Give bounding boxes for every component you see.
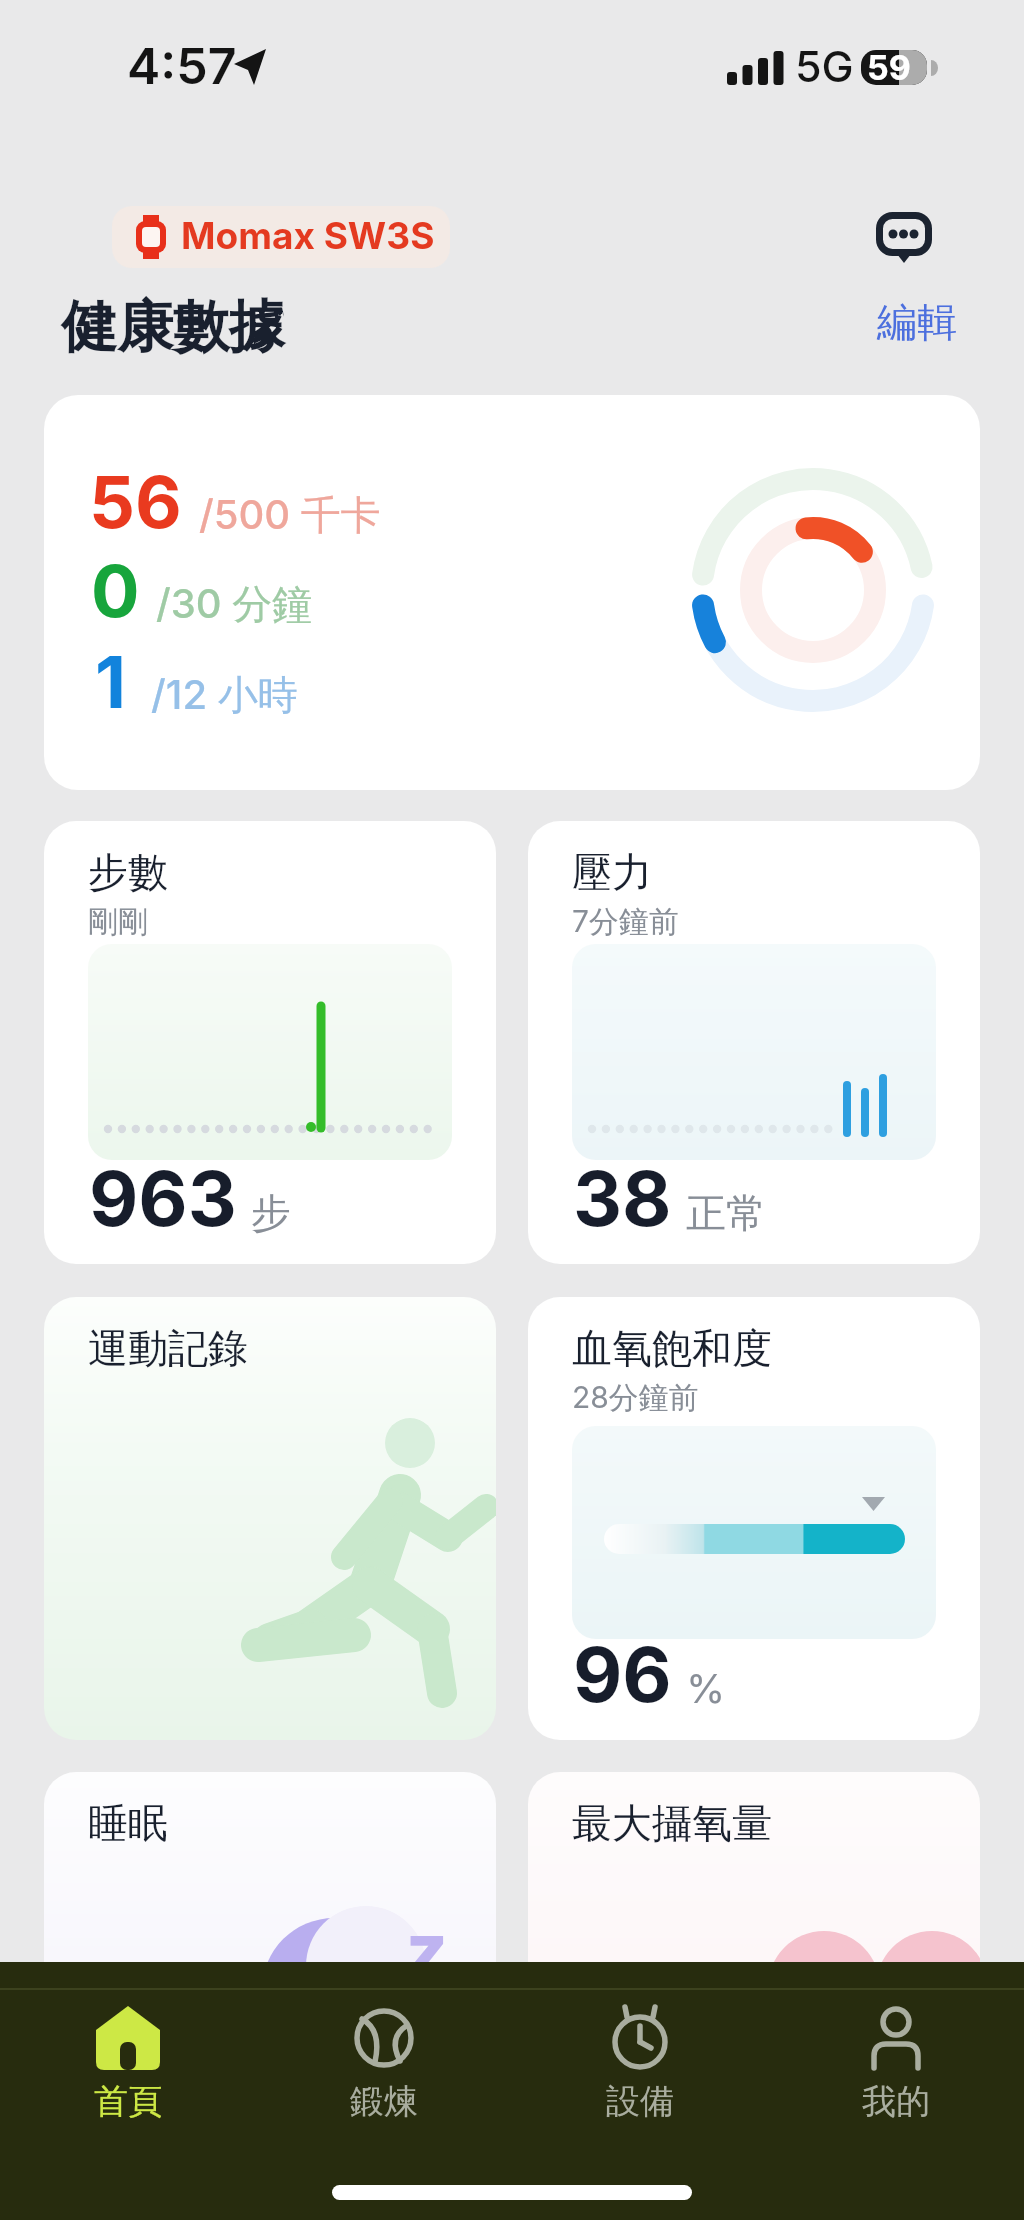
staticText: 編輯 xyxy=(877,297,957,347)
staticText: 剛剛 xyxy=(88,903,148,941)
staticText: Momax SW3S xyxy=(181,213,435,258)
staticText: z xyxy=(406,1905,448,1992)
staticText: 1 xyxy=(95,638,127,725)
button[interactable]: 步數 xyxy=(44,821,496,1264)
staticText: 鍛煉 xyxy=(350,2080,418,2123)
button[interactable] xyxy=(866,200,942,276)
staticText: /12 小時 xyxy=(151,670,298,721)
button[interactable]: 首頁 xyxy=(38,1992,218,2172)
button[interactable]: 設備 xyxy=(550,1992,730,2172)
button[interactable]: 我的 xyxy=(806,1992,986,2172)
staticText: 28分鐘前 xyxy=(572,1379,699,1417)
staticText: 設備 xyxy=(606,2080,674,2123)
staticText: 睡眠 xyxy=(88,1798,168,1848)
button[interactable]: 編輯 xyxy=(860,292,980,358)
staticText: /30 分鐘 xyxy=(156,579,313,630)
staticText: 壓力 xyxy=(572,847,652,897)
staticText: % xyxy=(686,1664,726,1712)
staticText: 0 xyxy=(91,547,140,634)
staticText: 963 xyxy=(89,1152,237,1244)
button[interactable]: 壓力 xyxy=(528,821,980,1264)
staticText: 56 xyxy=(89,458,182,545)
staticText: 最大攝氧量 xyxy=(572,1798,772,1848)
staticText: 健康數據 xyxy=(61,292,285,363)
staticText: 59 xyxy=(867,47,911,88)
staticText: 96 xyxy=(573,1628,672,1720)
staticText: /500 千卡 xyxy=(199,490,381,541)
staticText: 5G xyxy=(795,40,854,92)
staticText: 4:57 xyxy=(127,36,237,96)
button[interactable]: 鍛煉 xyxy=(294,1992,474,2172)
staticText: 7分鐘前 xyxy=(572,903,679,941)
button[interactable]: 血氧飽和度 xyxy=(528,1297,980,1740)
button[interactable]: 運動記錄 xyxy=(44,1297,496,1740)
button[interactable]: 56 xyxy=(44,395,980,790)
button[interactable]: 睡眠 xyxy=(44,1772,496,2215)
staticText: 正常 xyxy=(686,1188,766,1238)
staticText: 步數 xyxy=(88,847,168,897)
staticText: 步 xyxy=(251,1188,291,1238)
staticText: 38 xyxy=(573,1152,672,1244)
staticText: 血氧飽和度 xyxy=(572,1323,772,1373)
staticText: 首頁 xyxy=(94,2080,162,2123)
button[interactable]: 最大攝氧量 xyxy=(528,1772,980,2215)
staticText: 我的 xyxy=(862,2080,930,2123)
staticText: 運動記錄 xyxy=(88,1323,248,1373)
button[interactable]: Momax SW3S xyxy=(112,206,450,268)
